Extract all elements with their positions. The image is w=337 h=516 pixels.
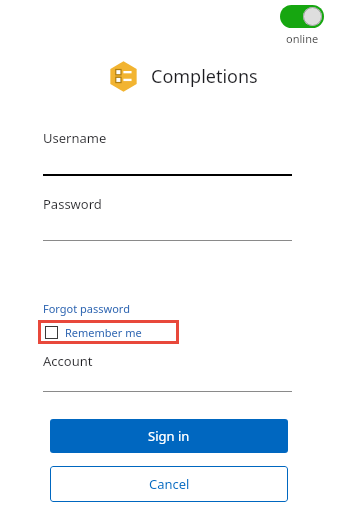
button[interactable]: Remember me — [38, 320, 179, 344]
staticText: Username — [43, 129, 107, 147]
staticText: Remember me — [65, 325, 142, 340]
staticText: Cancel — [149, 475, 190, 493]
button[interactable]: Sign in — [50, 419, 288, 453]
staticText: Completions — [151, 64, 258, 89]
other: Completions icon — [108, 61, 139, 92]
staticText: Password — [43, 195, 102, 213]
staticText: Forgot password — [43, 301, 130, 316]
staticText: Account — [43, 352, 93, 370]
button[interactable]: Cancel — [50, 466, 288, 502]
button[interactable]: Forgot password — [43, 301, 130, 316]
staticText: Sign in — [148, 427, 190, 445]
staticText: online — [286, 31, 319, 46]
button[interactable]: Online status toggle — [280, 5, 324, 28]
